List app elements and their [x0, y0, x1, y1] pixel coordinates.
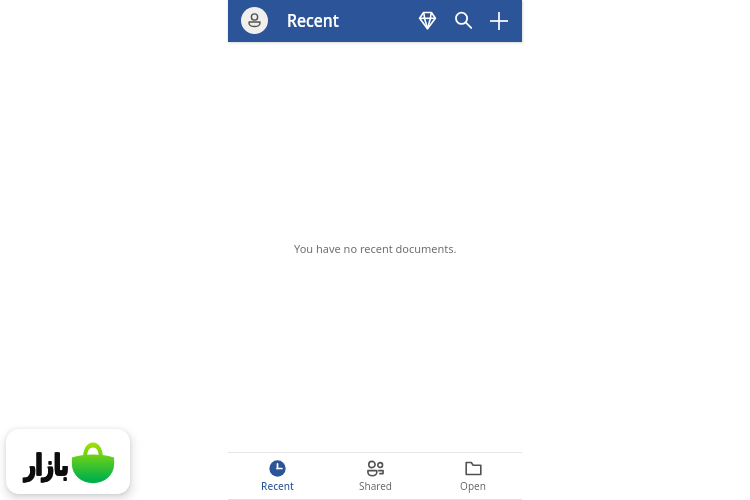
staticText: بازار [24, 448, 68, 482]
button[interactable]: Premium [411, 4, 444, 37]
staticText: بازار [25, 448, 69, 482]
button[interactable]: Search [447, 4, 480, 37]
staticText: بازار [24, 448, 68, 482]
staticText: بازار [24, 448, 68, 482]
button[interactable]: Account [241, 7, 268, 34]
staticText: Recent [261, 479, 294, 493]
staticText: بازار [24, 448, 68, 482]
staticText: بازار [25, 448, 69, 482]
staticText: You have no recent documents. [294, 241, 457, 256]
button[interactable]: New document [482, 4, 515, 37]
staticText: Recent [287, 8, 339, 33]
button[interactable]: Recent [228, 453, 326, 500]
button[interactable]: Open [424, 453, 522, 500]
button[interactable]: Shared [326, 453, 424, 500]
staticText: Shared [359, 479, 392, 493]
staticText: Open [460, 479, 486, 493]
